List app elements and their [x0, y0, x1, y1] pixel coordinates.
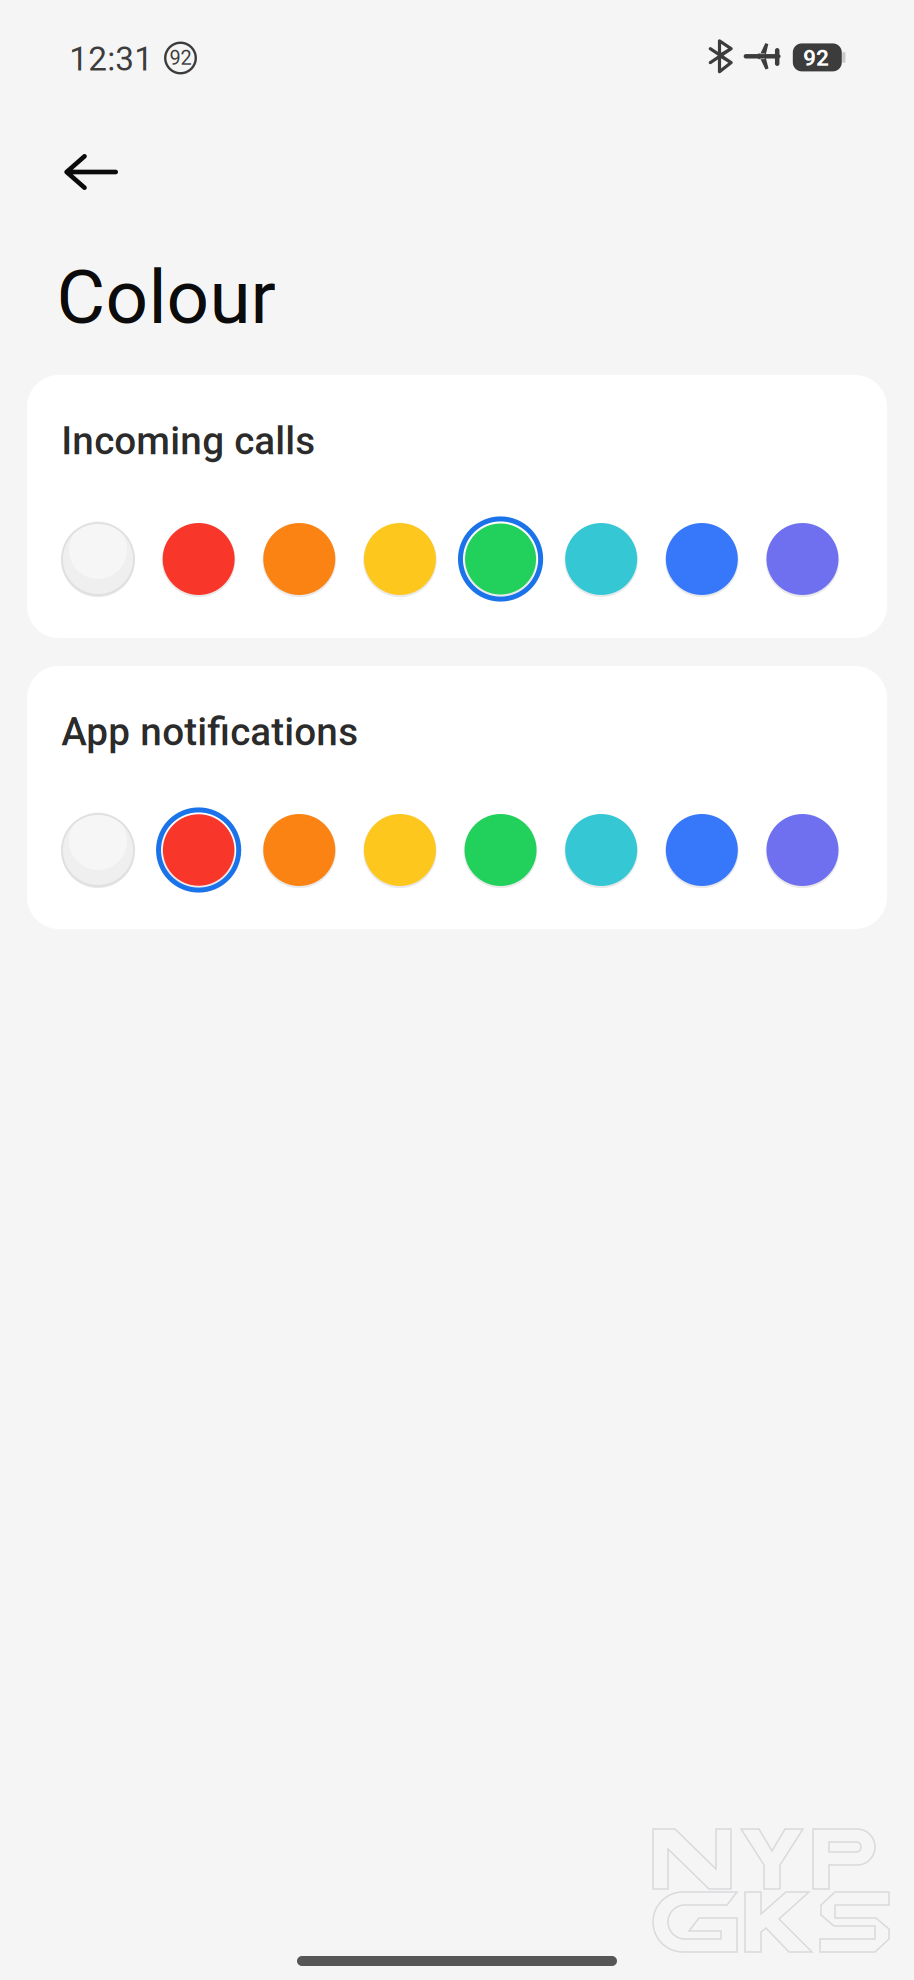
staticText: Colour — [56, 254, 275, 341]
button[interactable]: Red — [154, 514, 244, 604]
button[interactable]: Yellow — [355, 514, 445, 604]
button[interactable]: Teal — [556, 514, 646, 604]
button[interactable]: Blue — [657, 805, 747, 895]
staticText: 12:31 — [69, 40, 153, 79]
staticText: 92 — [803, 45, 829, 71]
staticText: 92 — [169, 46, 191, 70]
button[interactable]: Yellow — [355, 805, 445, 895]
button[interactable]: Red, selected — [154, 805, 244, 895]
button[interactable]: Back — [43, 124, 139, 220]
staticText: App notifications — [61, 709, 358, 755]
button[interactable]: White — [53, 514, 143, 604]
button[interactable]: Green, selected — [456, 514, 546, 604]
button[interactable]: Green — [456, 805, 546, 895]
button[interactable]: Purple — [757, 514, 847, 604]
button[interactable]: White — [53, 805, 143, 895]
button[interactable]: Purple — [757, 805, 847, 895]
button[interactable]: Orange — [254, 514, 344, 604]
button[interactable]: Orange — [254, 805, 344, 895]
button[interactable]: Teal — [556, 805, 646, 895]
staticText: Incoming calls — [61, 418, 315, 464]
button[interactable]: Blue — [657, 514, 747, 604]
